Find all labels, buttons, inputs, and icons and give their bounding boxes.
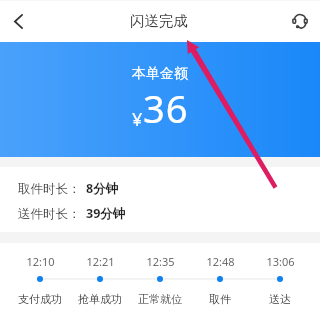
staticText: 送达 bbox=[269, 292, 291, 306]
button[interactable]: Customer service bbox=[280, 0, 320, 42]
staticText: 12:21 bbox=[86, 254, 115, 269]
staticText: 取件 bbox=[209, 292, 231, 306]
staticText: 抢单成功 bbox=[78, 292, 122, 306]
staticText: 39分钟 bbox=[86, 205, 126, 222]
staticText: 12:35 bbox=[146, 254, 175, 269]
button[interactable]: Back bbox=[0, 0, 36, 42]
staticText: 12:48 bbox=[206, 254, 235, 269]
staticText: 送件时长： bbox=[18, 206, 81, 222]
staticText: 36 bbox=[143, 82, 189, 134]
staticText: 本单金额 bbox=[132, 65, 188, 83]
staticText: 12:10 bbox=[26, 254, 55, 269]
staticText: ¥ bbox=[132, 107, 143, 132]
staticText: 支付成功 bbox=[18, 292, 62, 306]
staticText: 正常就位 bbox=[138, 292, 182, 306]
staticText: 13:06 bbox=[266, 254, 295, 269]
staticText: 取件时长： bbox=[18, 181, 81, 197]
staticText: 8分钟 bbox=[86, 180, 119, 197]
staticText: 闪送完成 bbox=[130, 12, 188, 30]
